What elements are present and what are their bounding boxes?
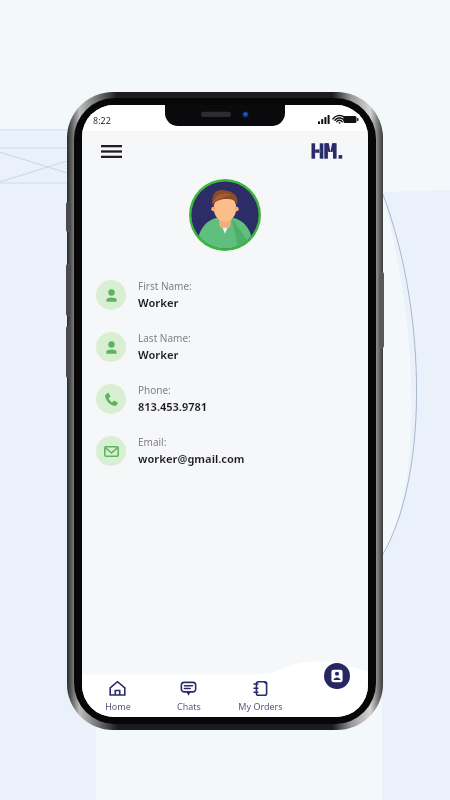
button[interactable]: Last Name:	[96, 331, 354, 362]
staticText: Last Name:	[138, 331, 191, 345]
staticText: 8:22	[93, 114, 111, 126]
button[interactable]: Phone:	[96, 383, 354, 414]
button[interactable]: First Name:	[96, 279, 354, 310]
staticText: Phone:	[138, 383, 171, 397]
staticText: Worker	[138, 347, 179, 362]
button[interactable]: Profile	[324, 663, 350, 689]
staticText: Email:	[138, 435, 167, 449]
staticText: worker@gmail.com	[138, 451, 245, 466]
button[interactable]: HM logo	[310, 140, 354, 162]
staticText: Home	[105, 700, 131, 712]
button[interactable]: Chats	[153, 680, 224, 712]
staticText: 813.453.9781	[138, 399, 208, 414]
staticText: Chats	[177, 700, 201, 712]
button[interactable]: Home	[82, 680, 153, 712]
button[interactable]: Menu	[96, 136, 126, 166]
staticText: Worker	[138, 295, 179, 310]
button[interactable]: My Orders	[224, 680, 296, 712]
staticText: My Orders	[238, 700, 283, 712]
button[interactable]: Email:	[96, 435, 354, 466]
staticText: First Name:	[138, 279, 192, 293]
